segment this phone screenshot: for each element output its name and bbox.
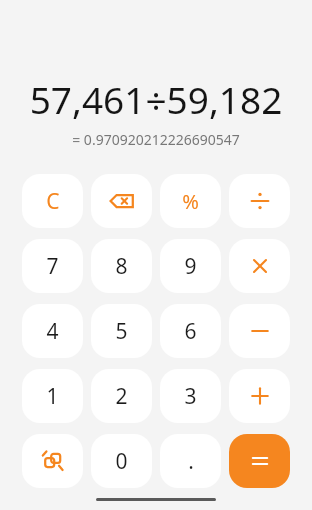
- staticText: .: [188, 447, 194, 476]
- staticText: 7: [46, 252, 59, 281]
- staticText: 57,461÷59,182: [16, 74, 296, 124]
- button[interactable]: Multiply: [229, 239, 290, 293]
- staticText: 9: [184, 252, 197, 281]
- button[interactable]: Unit converter: [22, 434, 83, 488]
- staticText: 5: [115, 317, 128, 346]
- button[interactable]: 5: [91, 304, 152, 358]
- button[interactable]: Backspace: [91, 174, 152, 228]
- button[interactable]: Plus: [229, 369, 290, 423]
- button[interactable]: 0: [91, 434, 152, 488]
- button[interactable]: 4: [22, 304, 83, 358]
- staticText: = 0.970920212226690547: [16, 130, 296, 149]
- button[interactable]: 2: [91, 369, 152, 423]
- staticText: 1: [46, 382, 59, 411]
- staticText: 6: [184, 317, 197, 346]
- button[interactable]: %: [160, 174, 221, 228]
- button[interactable]: 1: [22, 369, 83, 423]
- staticText: C: [46, 187, 60, 216]
- button[interactable]: 6: [160, 304, 221, 358]
- staticText: 0: [115, 447, 128, 476]
- button[interactable]: Minus: [229, 304, 290, 358]
- button[interactable]: 8: [91, 239, 152, 293]
- button[interactable]: Equals: [229, 434, 290, 488]
- staticText: %: [182, 188, 199, 215]
- button[interactable]: .: [160, 434, 221, 488]
- button[interactable]: 9: [160, 239, 221, 293]
- staticText: 2: [115, 382, 128, 411]
- staticText: 3: [184, 382, 197, 411]
- button[interactable]: Divide: [229, 174, 290, 228]
- staticText: 4: [46, 317, 59, 346]
- button[interactable]: C: [22, 174, 83, 228]
- button[interactable]: 3: [160, 369, 221, 423]
- staticText: 8: [115, 252, 128, 281]
- button[interactable]: 7: [22, 239, 83, 293]
